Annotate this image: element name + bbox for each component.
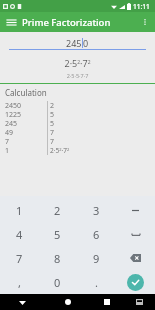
staticText: 245 bbox=[5, 119, 18, 128]
staticText: 1225 bbox=[5, 110, 22, 119]
staticText: 8 bbox=[54, 251, 61, 266]
button[interactable]: 5 bbox=[38, 222, 77, 246]
staticText: 4 bbox=[16, 227, 23, 242]
staticText: 5 bbox=[54, 227, 61, 242]
staticText: 5 bbox=[50, 119, 55, 128]
staticText: 7 bbox=[5, 137, 10, 146]
staticText: 1 bbox=[5, 146, 10, 155]
button[interactable]: More options bbox=[138, 15, 152, 29]
staticText: 7 bbox=[50, 128, 55, 137]
button[interactable]: . bbox=[77, 270, 116, 294]
staticText: 5 bbox=[50, 110, 55, 119]
staticText: 2·52·72 bbox=[50, 146, 70, 155]
staticText: 9 bbox=[93, 251, 100, 266]
staticText: 2 bbox=[54, 203, 61, 218]
button[interactable]: Open navigation menu bbox=[4, 15, 18, 29]
staticText: Calculation bbox=[5, 87, 47, 98]
staticText: 2450 bbox=[5, 101, 22, 110]
button[interactable]: 1 bbox=[0, 199, 38, 222]
staticText: 7 bbox=[16, 251, 23, 266]
staticText: . bbox=[95, 275, 98, 290]
button[interactable]: Backspace bbox=[116, 246, 155, 270]
staticText: , bbox=[18, 275, 21, 290]
button[interactable]: , bbox=[0, 270, 38, 294]
staticText: 7 bbox=[50, 137, 55, 146]
staticText: Prime Factorization bbox=[22, 16, 111, 29]
staticText: 6 bbox=[93, 227, 100, 242]
staticText: 11:11 bbox=[133, 2, 150, 11]
button[interactable]: 3 bbox=[77, 199, 116, 222]
staticText: 3 bbox=[93, 203, 100, 218]
button[interactable]: Minus bbox=[116, 199, 155, 222]
button[interactable]: 4 bbox=[0, 222, 38, 246]
button[interactable]: Home bbox=[45, 294, 91, 310]
staticText: 49 bbox=[5, 128, 14, 137]
staticText: 2·52·72 bbox=[0, 57, 155, 69]
button[interactable]: Back bbox=[0, 294, 45, 310]
button[interactable]: 0 bbox=[38, 270, 77, 294]
staticText: 2·5·5·7·7 bbox=[0, 72, 155, 79]
button[interactable]: 9 bbox=[77, 246, 116, 270]
button[interactable]: 245 bbox=[0, 37, 155, 49]
staticText: 1 bbox=[16, 203, 23, 218]
button[interactable]: Next field bbox=[116, 222, 155, 246]
button[interactable]: Confirm bbox=[116, 270, 155, 294]
button[interactable]: 8 bbox=[38, 246, 77, 270]
button[interactable]: Recent apps bbox=[91, 294, 123, 310]
button[interactable]: Hide keyboard bbox=[123, 294, 155, 310]
button[interactable]: 7 bbox=[0, 246, 38, 270]
button[interactable]: 2 bbox=[38, 199, 77, 222]
staticText: 0 bbox=[83, 37, 89, 49]
button[interactable]: 6 bbox=[77, 222, 116, 246]
staticText: 245 bbox=[66, 37, 82, 49]
staticText: 0 bbox=[54, 275, 61, 290]
staticText: 2 bbox=[50, 101, 55, 110]
